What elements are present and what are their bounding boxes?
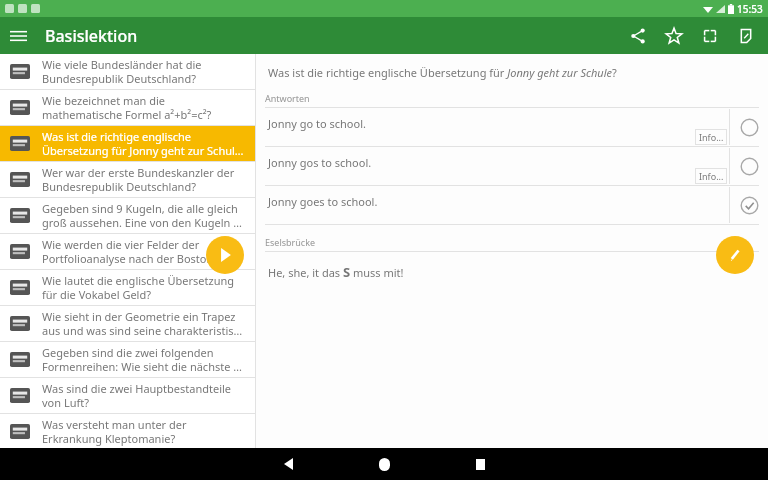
button[interactable]: Jonny go to school.: [256, 108, 768, 146]
button[interactable]: Favorite: [656, 18, 692, 54]
staticText: Was sind die zwei Hauptbestandteile von …: [42, 381, 245, 410]
button[interactable]: Wie werden die vier Felder der Portfolio…: [0, 234, 255, 269]
button[interactable]: Was versteht man unter der Erkrankung Kl…: [0, 414, 255, 448]
staticText: Eselsbrücke: [265, 236, 316, 248]
staticText: Info...: [699, 170, 724, 182]
button[interactable]: Info...: [695, 168, 727, 184]
button[interactable]: Play: [206, 236, 244, 274]
staticText: Info...: [699, 131, 724, 143]
staticText: Wie sieht in der Geometrie ein Trapez au…: [42, 309, 245, 338]
button[interactable]: Jonny gos to school.: [256, 147, 768, 185]
staticText: He, she, it das S muss mit!: [268, 263, 404, 281]
button[interactable]: Selected answer: [730, 186, 768, 224]
button[interactable]: Was ist die richtige englische Übersetzu…: [0, 126, 255, 161]
button[interactable]: Notes: [728, 18, 764, 54]
button[interactable]: Gegeben sind 9 Kugeln, die alle gleich g…: [0, 198, 255, 233]
staticText: Gegeben sind die zwei folgenden Formenre…: [42, 345, 245, 374]
staticText: Wie viele Bundesländer hat die Bundesrep…: [42, 57, 245, 86]
button[interactable]: Wie bezeichnet man die mathematische For…: [0, 90, 255, 125]
button[interactable]: Fullscreen: [692, 18, 728, 54]
staticText: Antworten: [265, 92, 310, 104]
staticText: Wer war der erste Bundeskanzler der Bund…: [42, 165, 245, 194]
staticText: Wie werden die vier Felder der Portfolio…: [42, 237, 245, 266]
staticText: Wie lautet die englische Übersetzung für…: [42, 273, 245, 302]
button[interactable]: Jonny goes to school.: [256, 186, 768, 224]
staticText: Jonny go to school.: [268, 116, 366, 131]
button[interactable]: Wie viele Bundesländer hat die Bundesrep…: [0, 54, 255, 89]
button[interactable]: Was sind die zwei Hauptbestandteile von …: [0, 378, 255, 413]
staticText: Jonny gos to school.: [268, 155, 372, 170]
button[interactable]: Recent apps: [432, 448, 528, 480]
button[interactable]: Wer war der erste Bundeskanzler der Bund…: [0, 162, 255, 197]
button[interactable]: Open navigation drawer: [0, 17, 37, 54]
staticText: Jonny goes to school.: [268, 194, 378, 209]
button[interactable]: Select answer: [730, 108, 768, 146]
staticText: 15:53: [737, 2, 763, 16]
button[interactable]: Home: [336, 448, 432, 480]
button[interactable]: Edit: [716, 236, 754, 274]
button[interactable]: Select answer: [730, 147, 768, 185]
button[interactable]: Back: [240, 448, 336, 480]
button[interactable]: Wie lautet die englische Übersetzung für…: [0, 270, 255, 305]
staticText: Was ist die richtige englische Übersetzu…: [268, 65, 617, 80]
button[interactable]: Info...: [695, 129, 727, 145]
button[interactable]: Share: [620, 18, 656, 54]
staticText: Was versteht man unter der Erkrankung Kl…: [42, 417, 245, 446]
staticText: Gegeben sind 9 Kugeln, die alle gleich g…: [42, 201, 245, 230]
staticText: Basislektion: [45, 25, 138, 47]
button[interactable]: Gegeben sind die zwei folgenden Formenre…: [0, 342, 255, 377]
staticText: Wie bezeichnet man die mathematische For…: [42, 93, 245, 122]
button[interactable]: Wie sieht in der Geometrie ein Trapez au…: [0, 306, 255, 341]
staticText: Was ist die richtige englische Übersetzu…: [42, 129, 245, 158]
